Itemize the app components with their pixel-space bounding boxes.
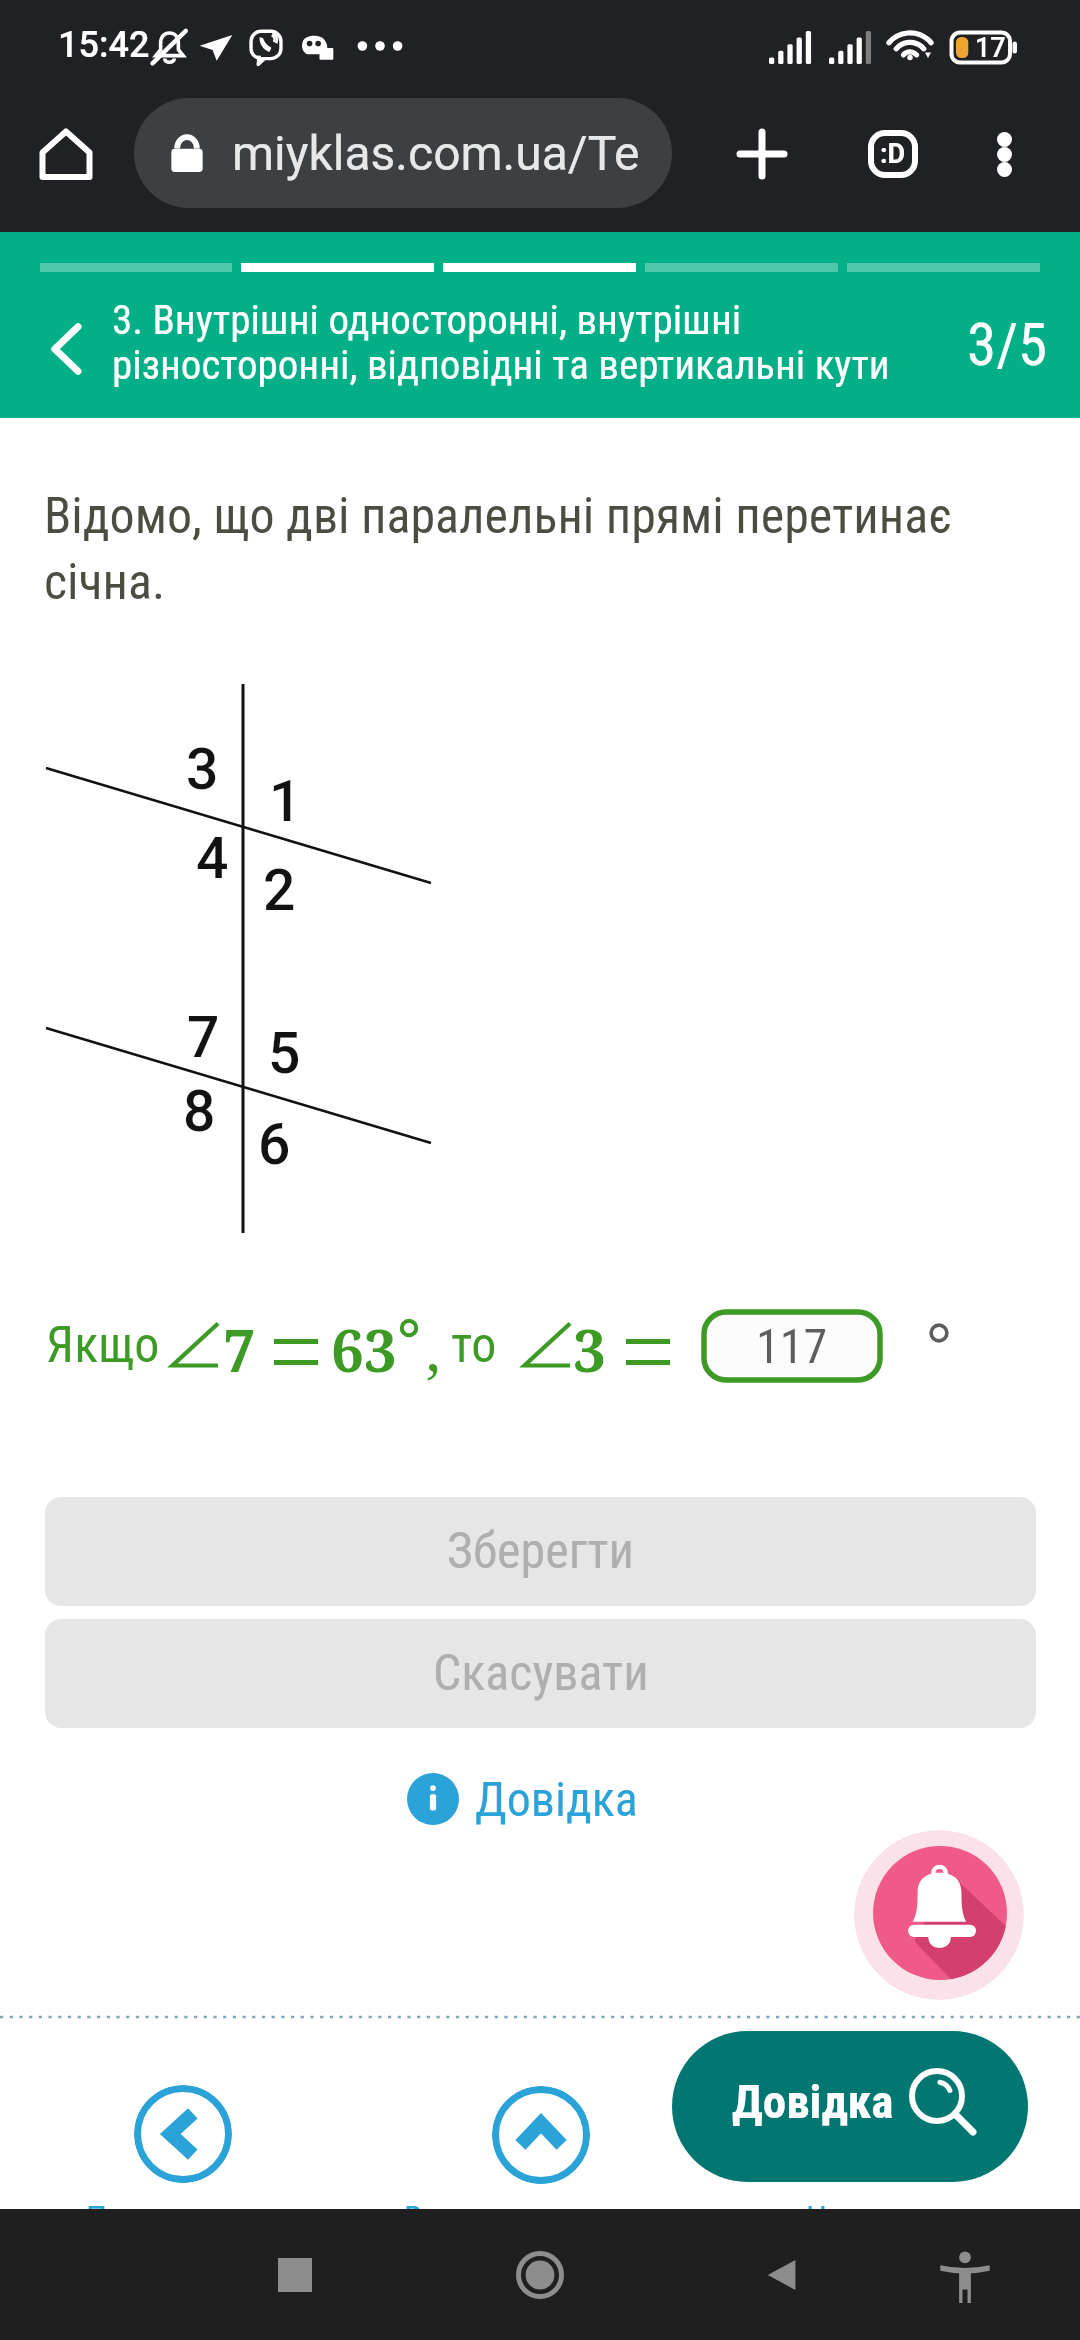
- staticText: 7: [223, 1310, 256, 1389]
- staticText: 117: [756, 1318, 828, 1374]
- staticText: miyklas.com.ua/Te: [232, 125, 640, 181]
- staticText: 8: [183, 1078, 216, 1142]
- staticText: 4: [196, 825, 229, 889]
- button[interactable]: More options: [962, 112, 1046, 196]
- staticText: Попереднє: [86, 2198, 242, 2238]
- staticText: Зберегти: [447, 1522, 634, 1581]
- button[interactable]: Back: [22, 290, 110, 408]
- staticText: 5: [268, 1020, 301, 1084]
- staticText: 1: [269, 768, 302, 832]
- button[interactable]: Back: [742, 2235, 822, 2315]
- button[interactable]: Home: [24, 112, 108, 196]
- button[interactable]: Довідка: [672, 2031, 1028, 2182]
- button[interactable]: Tabs: [851, 112, 935, 196]
- button[interactable]: miyklas.com.ua/Te: [134, 98, 672, 208]
- button[interactable]: Notifications: [854, 1830, 1024, 2000]
- button[interactable]: Довідка: [407, 1770, 638, 1828]
- staticText: Вгору: [404, 2198, 483, 2238]
- staticText: 17: [975, 32, 1006, 64]
- staticText: Наступне: [806, 2198, 939, 2238]
- staticText: :D: [880, 138, 906, 170]
- staticText: ,: [426, 1310, 441, 1389]
- button[interactable]: Скасувати: [45, 1619, 1036, 1728]
- button[interactable]: Scroll up: [492, 2086, 590, 2184]
- staticText: Довідка: [732, 2074, 894, 2129]
- staticText: 3/5: [967, 310, 1048, 379]
- button[interactable]: Зберегти: [45, 1497, 1036, 1606]
- staticText: 3: [186, 736, 219, 800]
- staticText: 15:42: [58, 24, 150, 66]
- button[interactable]: Home: [500, 2235, 580, 2315]
- staticText: Відомо, що дві паралельні прямі перетина…: [44, 487, 1004, 611]
- staticText: 7: [187, 1004, 220, 1068]
- staticText: 63: [331, 1310, 397, 1389]
- staticText: 3. Внутрішні односторонні, внутрішні різ…: [112, 296, 912, 389]
- staticText: Скасувати: [433, 1644, 649, 1703]
- staticText: то: [451, 1316, 497, 1375]
- staticText: 3: [573, 1310, 606, 1389]
- button[interactable]: 117: [701, 1309, 883, 1383]
- button[interactable]: New tab: [720, 112, 804, 196]
- button[interactable]: Accessibility: [925, 2235, 1005, 2315]
- staticText: 2: [263, 857, 296, 921]
- button[interactable]: Previous: [134, 2085, 232, 2183]
- button[interactable]: Recents: [255, 2235, 335, 2315]
- staticText: 6: [258, 1111, 291, 1175]
- staticText: Якщо: [46, 1316, 160, 1375]
- staticText: Довідка: [475, 1771, 638, 1827]
